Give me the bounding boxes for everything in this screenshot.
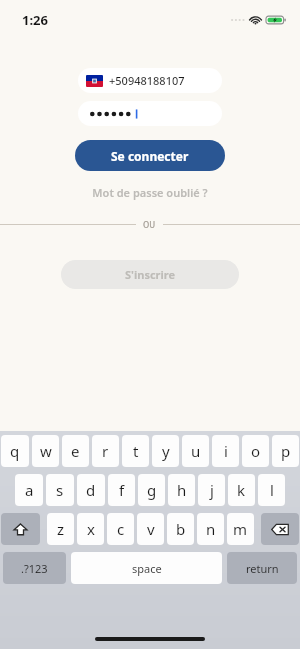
staticText: t bbox=[133, 441, 139, 461]
button[interactable]: r bbox=[92, 435, 119, 467]
button[interactable]: i bbox=[212, 435, 239, 467]
button[interactable]: space bbox=[71, 552, 222, 584]
staticText: OU bbox=[143, 219, 156, 230]
staticText: 1:26 bbox=[22, 11, 48, 29]
button[interactable]: t bbox=[122, 435, 149, 467]
staticText: return bbox=[246, 561, 279, 576]
staticText: y bbox=[162, 441, 170, 461]
button[interactable]: e bbox=[62, 435, 89, 467]
button[interactable]: u bbox=[182, 435, 209, 467]
button[interactable]: v bbox=[137, 513, 164, 545]
button[interactable]: z bbox=[47, 513, 74, 545]
staticText: c bbox=[117, 519, 125, 539]
button[interactable]: q bbox=[1, 435, 29, 467]
staticText: g bbox=[147, 480, 157, 500]
button[interactable]: m bbox=[227, 513, 254, 545]
button[interactable]: return bbox=[227, 552, 297, 584]
button[interactable]: s bbox=[46, 474, 74, 506]
button[interactable]: x bbox=[77, 513, 104, 545]
staticText: i bbox=[224, 441, 228, 461]
staticText: f bbox=[119, 480, 125, 500]
button[interactable]: Shift bbox=[1, 513, 40, 545]
button[interactable]: y bbox=[152, 435, 179, 467]
staticText: e bbox=[71, 441, 80, 461]
staticText: a bbox=[25, 480, 34, 500]
button[interactable]: +50948188107 bbox=[78, 68, 222, 93]
staticText: v bbox=[147, 519, 155, 539]
button[interactable]: Se connecter bbox=[75, 140, 225, 171]
staticText: n bbox=[206, 519, 216, 539]
staticText: .?123 bbox=[21, 561, 48, 576]
staticText: m bbox=[233, 519, 248, 539]
button[interactable]: g bbox=[138, 474, 165, 506]
staticText: p bbox=[281, 441, 291, 461]
staticText: w bbox=[40, 441, 52, 461]
staticText: j bbox=[210, 480, 214, 500]
staticText: z bbox=[57, 519, 65, 539]
button[interactable] bbox=[78, 101, 222, 126]
button[interactable]: j bbox=[198, 474, 225, 506]
button[interactable]: f bbox=[108, 474, 135, 506]
staticText: s bbox=[56, 480, 64, 500]
button[interactable]: b bbox=[167, 513, 194, 545]
staticText: o bbox=[251, 441, 261, 461]
button[interactable]: a bbox=[15, 474, 43, 506]
staticText: Se connecter bbox=[111, 148, 189, 164]
button[interactable]: h bbox=[168, 474, 195, 506]
button[interactable]: Backspace bbox=[261, 513, 299, 545]
staticText: b bbox=[176, 519, 186, 539]
staticText: l bbox=[270, 480, 274, 500]
staticText: x bbox=[87, 519, 95, 539]
staticText: space bbox=[132, 561, 162, 576]
button[interactable]: c bbox=[107, 513, 134, 545]
button[interactable]: w bbox=[32, 435, 59, 467]
staticText: q bbox=[10, 441, 20, 461]
button[interactable]: Mot de passe oublié ? bbox=[0, 181, 300, 204]
button[interactable]: n bbox=[197, 513, 224, 545]
button[interactable]: k bbox=[228, 474, 255, 506]
button[interactable]: S'inscrire bbox=[61, 260, 239, 289]
staticText: k bbox=[237, 480, 246, 500]
staticText: u bbox=[191, 441, 201, 461]
button[interactable]: p bbox=[272, 435, 299, 467]
button[interactable]: o bbox=[242, 435, 269, 467]
staticText: S'inscrire bbox=[125, 267, 176, 282]
staticText: +50948188107 bbox=[109, 73, 185, 88]
staticText: d bbox=[86, 480, 96, 500]
button[interactable]: d bbox=[77, 474, 105, 506]
button[interactable]: l bbox=[258, 474, 285, 506]
staticText: r bbox=[102, 441, 109, 461]
button[interactable]: .?123 bbox=[3, 552, 66, 584]
staticText: h bbox=[177, 480, 187, 500]
